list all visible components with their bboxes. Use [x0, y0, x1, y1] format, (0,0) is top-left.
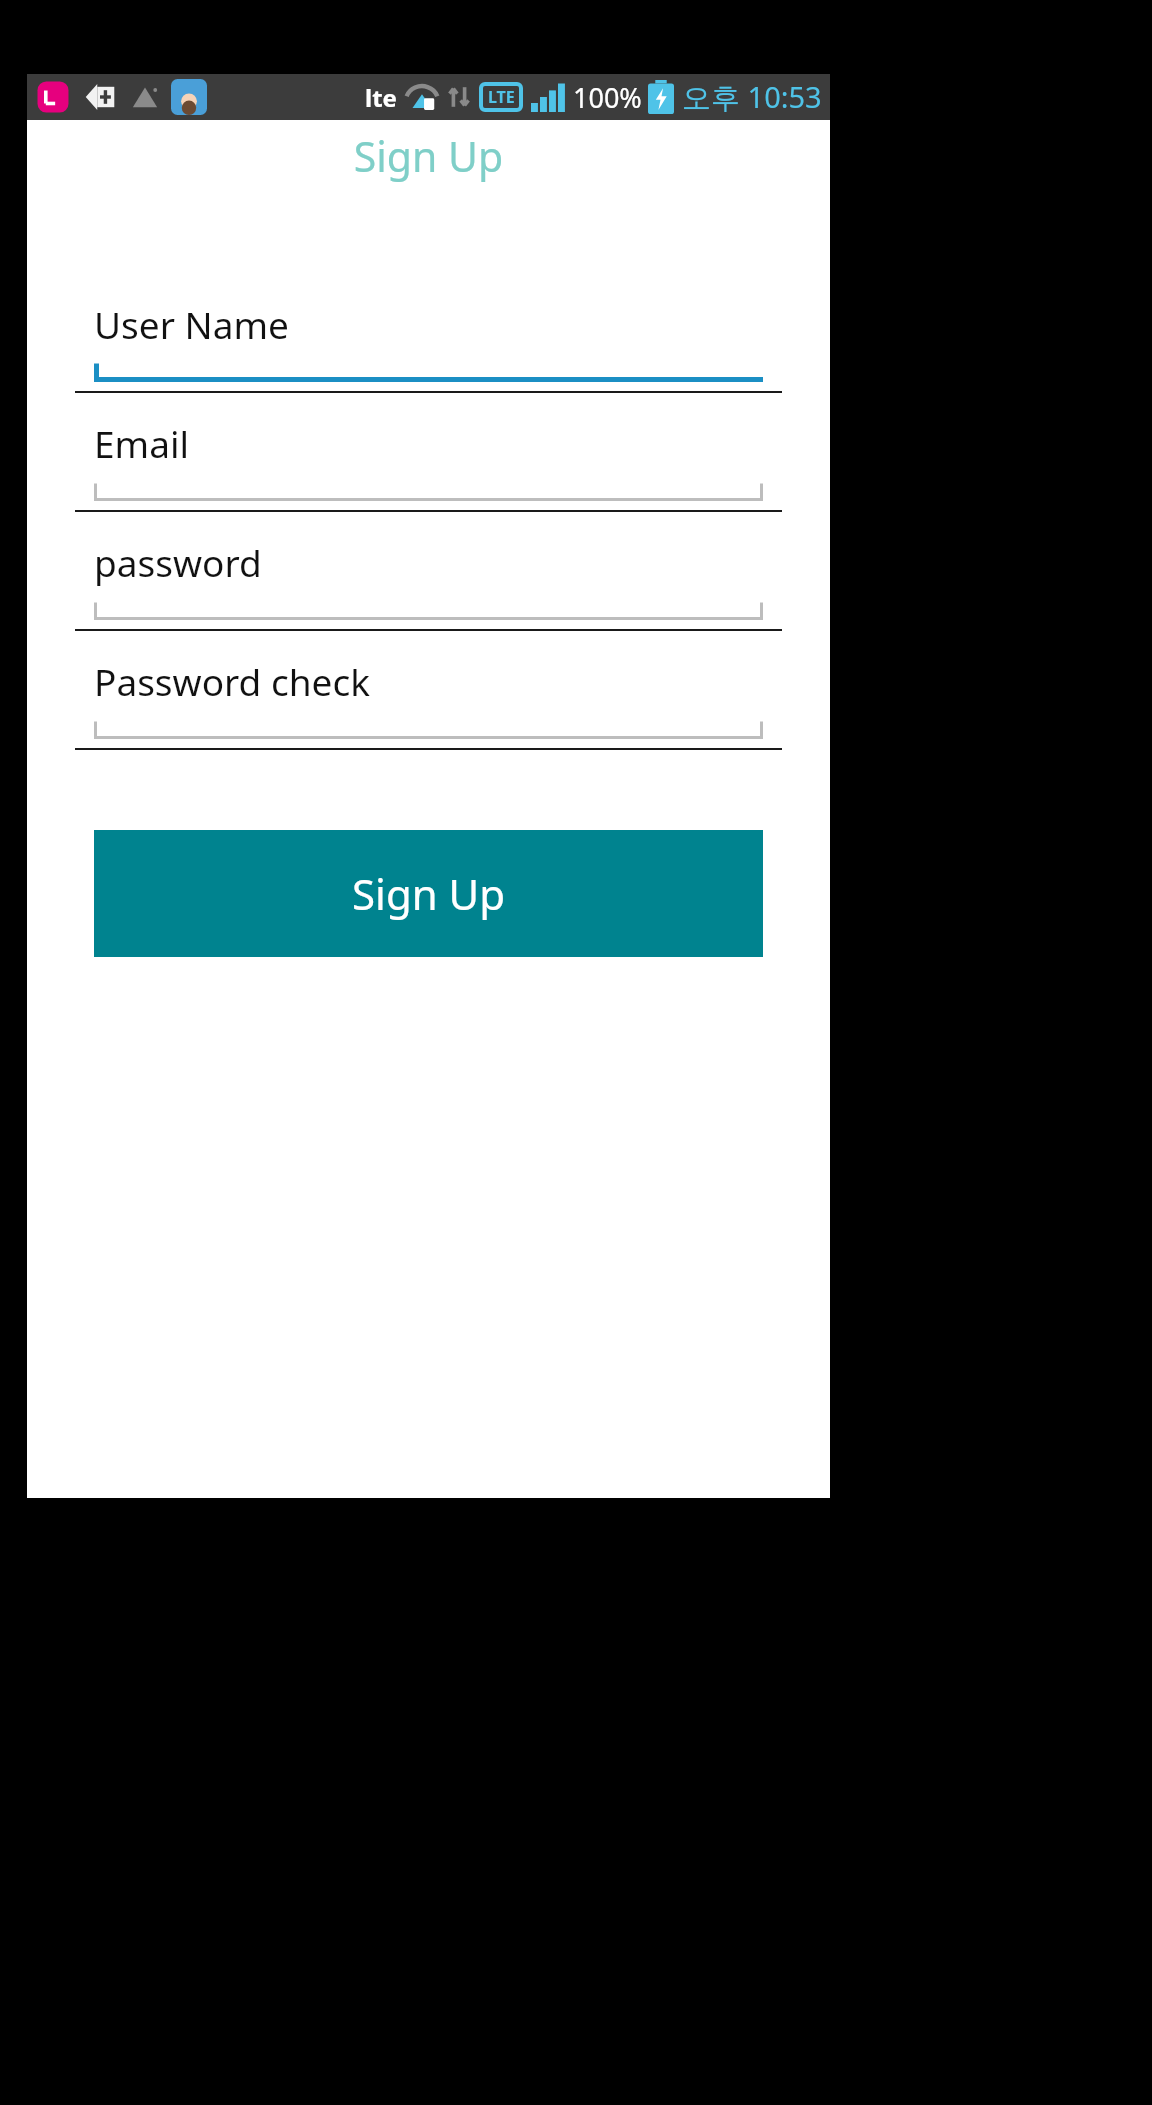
staticText: LTE [488, 86, 515, 108]
staticText: 오후 10:53 [682, 77, 822, 117]
staticText: Sign Up [27, 128, 830, 184]
button[interactable]: Sign Up [94, 830, 763, 957]
button[interactable]: User Name [27, 280, 830, 368]
staticText: User Name [94, 299, 289, 349]
staticText: Password check [94, 656, 370, 706]
staticText: Sign Up [352, 865, 506, 922]
staticText: 100% [573, 79, 642, 116]
staticText: password [94, 537, 262, 587]
staticText: Email [94, 418, 190, 468]
staticText: lte [365, 81, 397, 114]
button[interactable]: Password check [27, 637, 830, 725]
button[interactable]: Email [27, 399, 830, 487]
button[interactable]: password [27, 518, 830, 606]
